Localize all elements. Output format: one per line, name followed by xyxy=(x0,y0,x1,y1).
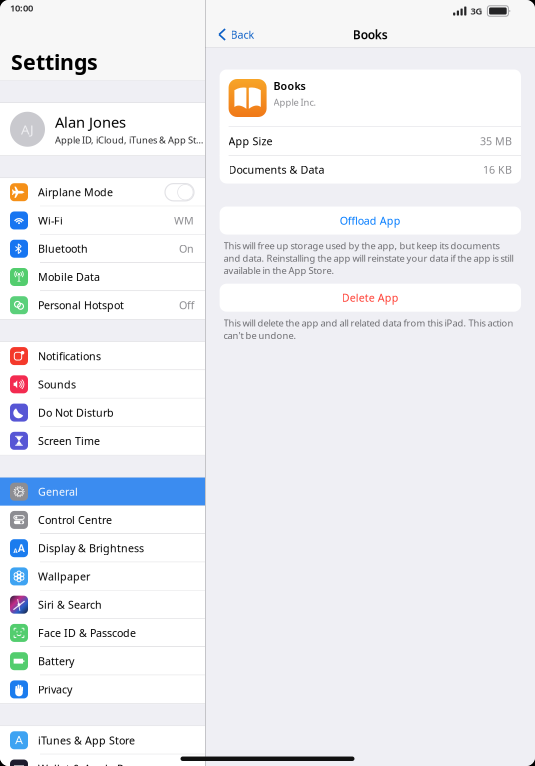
button[interactable]: Offload App xyxy=(220,206,521,234)
staticText: iTunes & App Store xyxy=(38,733,135,747)
staticText: Books xyxy=(353,26,388,42)
button[interactable]: Control Centre xyxy=(0,506,205,534)
staticText: Bluetooth xyxy=(38,242,88,256)
button[interactable]: Mobile Data xyxy=(0,263,205,291)
staticText: App Size xyxy=(229,134,273,148)
staticText: Back xyxy=(231,27,255,42)
staticText: Personal Hotspot xyxy=(38,298,124,312)
staticText: 35 MB xyxy=(480,134,512,148)
staticText: 3G xyxy=(470,5,482,17)
button[interactable]: Wi-Fi xyxy=(0,206,205,234)
staticText: On xyxy=(179,242,194,256)
button[interactable]: Personal Hotspot xyxy=(0,291,205,319)
staticText: Wallet & Apple Pay xyxy=(38,761,134,766)
button[interactable]: AJ xyxy=(0,103,205,155)
button[interactable]: Wallpaper xyxy=(0,562,205,590)
staticText: Control Centre xyxy=(38,513,112,527)
staticText: A xyxy=(18,541,25,555)
staticText: 10:00 xyxy=(10,2,33,14)
button[interactable]: Face ID & Passcode xyxy=(0,619,205,647)
button[interactable]: Delete App xyxy=(220,284,521,312)
button[interactable]: Sounds xyxy=(0,370,205,398)
staticText: Alan Jones xyxy=(55,112,126,132)
staticText: 16 KB xyxy=(483,162,512,177)
staticText: General xyxy=(38,485,78,499)
staticText: This will free up storage used by the ap… xyxy=(224,239,514,277)
button[interactable]: Back xyxy=(214,22,259,47)
staticText: Wallpaper xyxy=(38,569,90,583)
button[interactable]: General xyxy=(0,478,205,506)
staticText: Off xyxy=(179,298,194,312)
staticText: Delete App xyxy=(342,291,399,305)
button[interactable]: Screen Time xyxy=(0,427,205,455)
staticText: Apple Inc. xyxy=(274,96,317,108)
staticText: Wi-Fi xyxy=(38,213,63,228)
staticText: Display & Brightness xyxy=(38,541,144,555)
staticText: Airplane Mode xyxy=(38,185,113,199)
staticText: This will delete the app and all related… xyxy=(224,317,514,341)
button[interactable]: A xyxy=(0,534,205,562)
staticText: Sounds xyxy=(38,377,76,391)
staticText: AJ xyxy=(21,120,34,138)
staticText: Settings xyxy=(11,48,98,76)
staticText: Mobile Data xyxy=(38,270,100,284)
button[interactable]: Siri & Search xyxy=(0,590,205,619)
button[interactable]: Notifications xyxy=(0,342,205,370)
button[interactable]: iTunes & App Store xyxy=(0,726,205,754)
staticText: Screen Time xyxy=(38,434,100,448)
staticText: Do Not Disturb xyxy=(38,405,114,420)
button[interactable]: Battery xyxy=(0,647,205,675)
button[interactable]: Airplane Mode xyxy=(0,178,205,206)
staticText: Offload App xyxy=(340,213,401,228)
button[interactable]: Do Not Disturb xyxy=(0,398,205,427)
staticText: Battery xyxy=(38,654,74,668)
staticText: Apple ID, iCloud, iTunes & App St… xyxy=(55,134,203,146)
button[interactable]: Privacy xyxy=(0,675,205,703)
staticText: WM xyxy=(174,213,194,228)
staticText: Books xyxy=(274,79,306,93)
staticText: Notifications xyxy=(38,349,101,363)
staticText: Face ID & Passcode xyxy=(38,626,136,640)
staticText: Privacy xyxy=(38,682,72,696)
button[interactable]: Bluetooth xyxy=(0,235,205,263)
staticText: A xyxy=(13,546,17,555)
staticText: Documents & Data xyxy=(229,162,325,177)
staticText: Siri & Search xyxy=(38,598,102,612)
button[interactable]: Wallet & Apple Pay xyxy=(0,754,205,766)
